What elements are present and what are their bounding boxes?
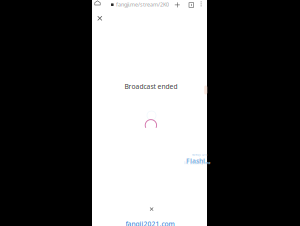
staticText: Flashing (186, 157, 212, 165)
staticText: fangji2021.com (125, 220, 174, 226)
button[interactable]: Tabs (187, 1, 195, 9)
button[interactable]: fangji2021.com (92, 220, 207, 226)
button[interactable]: Dismiss (148, 205, 155, 213)
staticText: FANGJI LIVE (192, 153, 207, 156)
button[interactable]: Menu (199, 0, 204, 8)
button[interactable]: Close (95, 14, 104, 23)
staticText: live streaming now (184, 161, 210, 165)
button[interactable]: New tab (173, 1, 181, 9)
button[interactable]: fangji.me/stream/2K0 (116, 0, 172, 9)
staticText: Broadcast ended (124, 82, 177, 91)
staticText: fangji.me/stream/2K0 (116, 1, 169, 8)
button[interactable]: Home (93, 0, 102, 6)
